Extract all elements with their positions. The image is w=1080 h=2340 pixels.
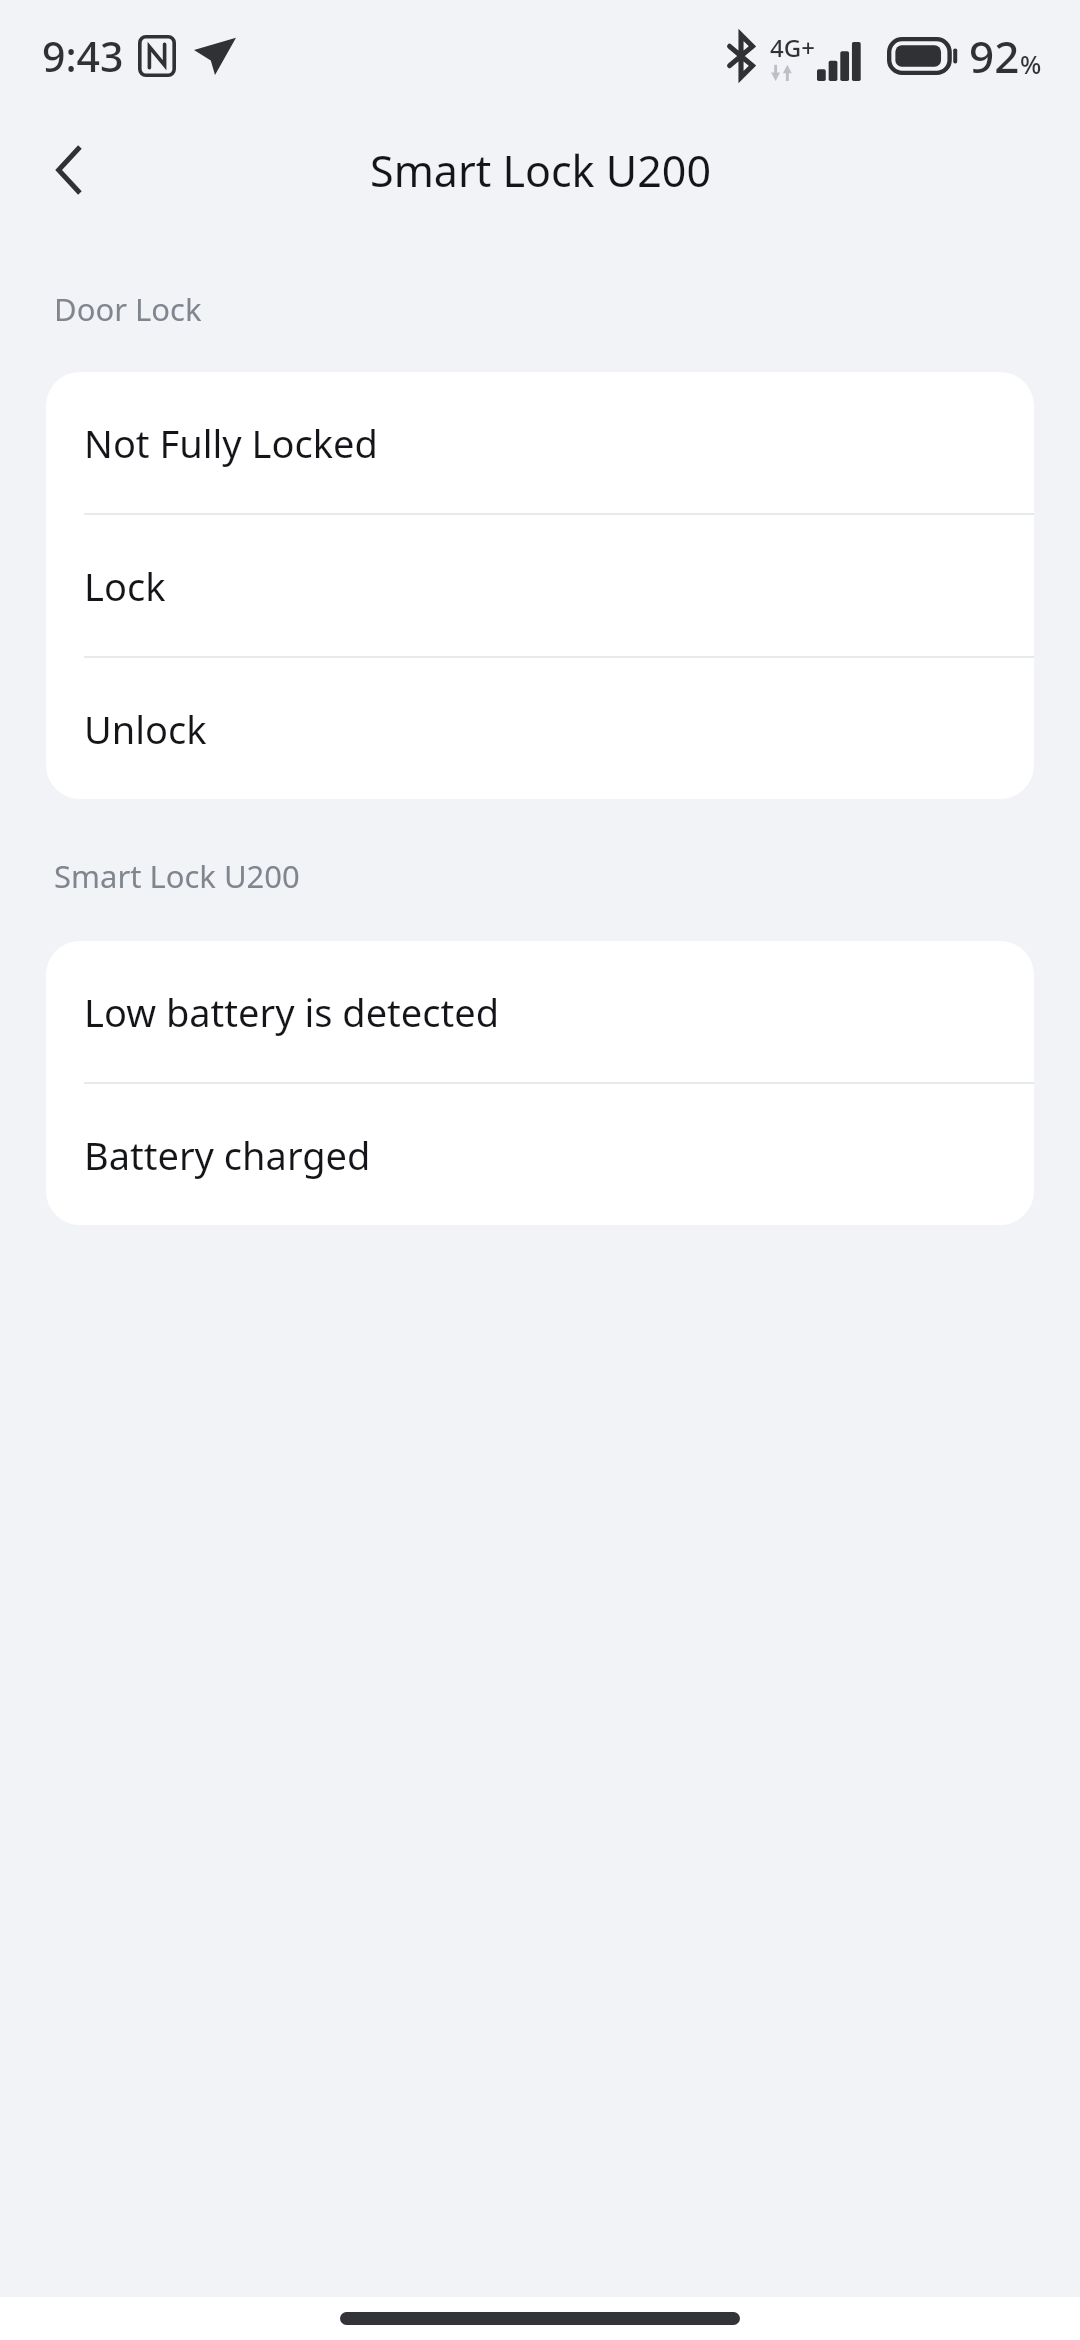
staticText: 92 — [969, 26, 1020, 86]
staticText: Battery charged — [84, 1129, 371, 1181]
button[interactable]: Lock — [46, 515, 1034, 656]
staticText: Low battery is detected — [84, 986, 499, 1038]
button[interactable]: Low battery is detected — [46, 941, 1034, 1082]
staticText: Not Fully Locked — [84, 417, 378, 469]
staticText: Lock — [84, 560, 166, 612]
button[interactable]: Not Fully Locked — [46, 372, 1034, 513]
staticText: Smart Lock U200 — [370, 141, 711, 200]
button[interactable]: Battery charged — [46, 1084, 1034, 1225]
button[interactable]: Unlock — [46, 658, 1034, 799]
staticText: Unlock — [84, 703, 207, 755]
staticText: % — [1020, 47, 1042, 81]
staticText: Smart Lock U200 — [54, 855, 300, 897]
staticText: 4G+ — [770, 31, 815, 64]
staticText: Door Lock — [54, 288, 202, 330]
staticText: 9:43 — [42, 28, 124, 84]
button[interactable]: Back — [14, 115, 124, 225]
